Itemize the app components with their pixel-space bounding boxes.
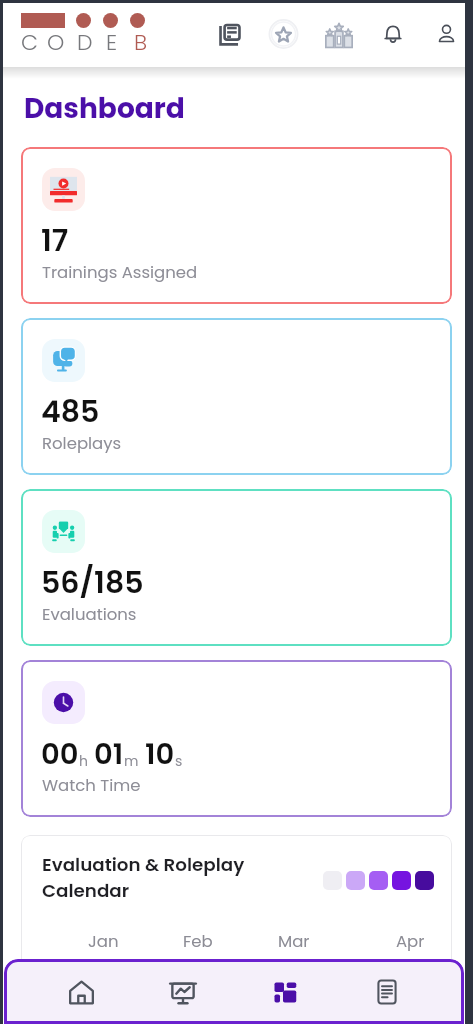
button[interactable]: 485	[21, 318, 452, 475]
button[interactable]: Profile	[425, 3, 468, 55]
staticText: E	[106, 27, 118, 58]
staticText: Watch Time	[42, 774, 141, 797]
staticText: 01	[94, 734, 124, 775]
staticText: Evaluation & Roleplay Calendar	[42, 852, 245, 904]
button[interactable]: 17	[21, 147, 452, 304]
button[interactable]: Documents	[352, 963, 422, 1021]
staticText: 17	[41, 220, 69, 262]
button[interactable]: Notifications	[371, 3, 415, 55]
staticText: Dashboard	[24, 89, 185, 128]
staticText: s	[175, 751, 183, 771]
button[interactable]: Documents	[206, 3, 254, 55]
staticText: Mar	[278, 930, 310, 953]
button[interactable]: Leaderboard	[313, 3, 365, 55]
button[interactable]: Evaluation & Roleplay Calendar	[21, 835, 452, 1024]
staticText: Roleplays	[42, 432, 122, 455]
staticText: B	[134, 27, 148, 58]
staticText: Apr	[396, 930, 425, 953]
button[interactable]: Dashboard	[250, 963, 320, 1021]
staticText: Evaluations	[42, 603, 137, 626]
button[interactable]: 56/185	[21, 489, 452, 646]
button[interactable]: 00	[21, 660, 452, 817]
staticText: m	[124, 751, 139, 771]
staticText: Trainings Assigned	[42, 261, 198, 284]
staticText: 56/185	[41, 562, 144, 604]
staticText: h	[79, 751, 88, 771]
staticText: Feb	[183, 930, 213, 953]
staticText: C	[21, 27, 38, 58]
button[interactable]: Rewards	[258, 3, 309, 55]
button[interactable]: Reports	[148, 963, 218, 1021]
staticText: 00	[41, 734, 79, 775]
button[interactable]: Home	[46, 963, 116, 1021]
staticText: 10	[145, 734, 175, 775]
staticText: O	[47, 27, 65, 58]
staticText: D	[77, 27, 93, 58]
staticText: Jan	[88, 930, 119, 953]
staticText: 485	[41, 391, 100, 433]
